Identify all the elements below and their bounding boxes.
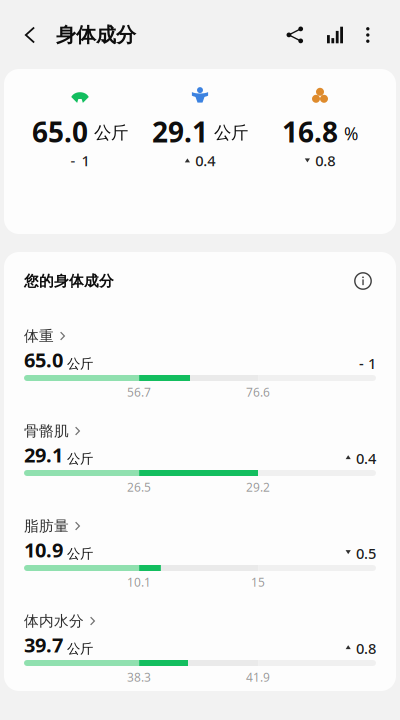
button[interactable]: Trends — [315, 7, 355, 63]
staticText: 体内水分 — [24, 612, 84, 630]
staticText: 41.9 — [246, 669, 270, 685]
staticText: 脂肪量 — [24, 517, 69, 535]
staticText: 公斤 — [214, 122, 248, 143]
staticText: 56.7 — [127, 384, 151, 400]
button[interactable]: Back — [14, 7, 46, 63]
staticText: 10.9 — [24, 536, 63, 563]
staticText: 您的身体成分 — [24, 272, 114, 290]
staticText: 10.1 — [127, 574, 151, 590]
staticText: 29.1 — [152, 113, 208, 150]
staticText: 体重 — [24, 327, 54, 345]
staticText: 身体成分 — [56, 23, 136, 47]
staticText: 39.7 — [24, 631, 63, 658]
staticText: 29.2 — [246, 479, 270, 495]
staticText: 0.4 — [195, 151, 215, 170]
button[interactable]: Information — [350, 268, 376, 294]
staticText: - 1 — [359, 353, 376, 373]
button[interactable]: 体内水分 — [24, 612, 376, 683]
button[interactable]: More options — [355, 7, 389, 63]
staticText: 1 — [81, 151, 89, 170]
staticText: 16.8 — [282, 113, 338, 150]
staticText: 15 — [251, 574, 265, 590]
staticText: 65.0 — [24, 346, 63, 373]
button[interactable]: 脂肪量 — [24, 517, 376, 588]
staticText: 29.1 — [24, 441, 63, 468]
staticText: 骨骼肌 — [24, 422, 69, 440]
staticText: - — [70, 151, 75, 170]
staticText: 0.8 — [315, 151, 335, 170]
staticText: 38.3 — [127, 669, 151, 685]
staticText: 0.8 — [356, 638, 376, 658]
staticText: 65.0 — [32, 113, 88, 150]
staticText: 公斤 — [67, 641, 93, 657]
staticText: 公斤 — [67, 546, 93, 562]
button[interactable]: 体重 — [24, 327, 376, 398]
staticText: 76.6 — [246, 384, 270, 400]
staticText: 26.5 — [127, 479, 151, 495]
staticText: 0.5 — [356, 543, 376, 563]
staticText: 0.4 — [356, 448, 376, 468]
staticText: % — [344, 122, 358, 145]
button[interactable]: 骨骼肌 — [24, 422, 376, 493]
staticText: 公斤 — [67, 451, 93, 467]
button[interactable]: Share — [275, 7, 315, 63]
staticText: 公斤 — [94, 122, 128, 143]
staticText: 公斤 — [67, 356, 93, 372]
